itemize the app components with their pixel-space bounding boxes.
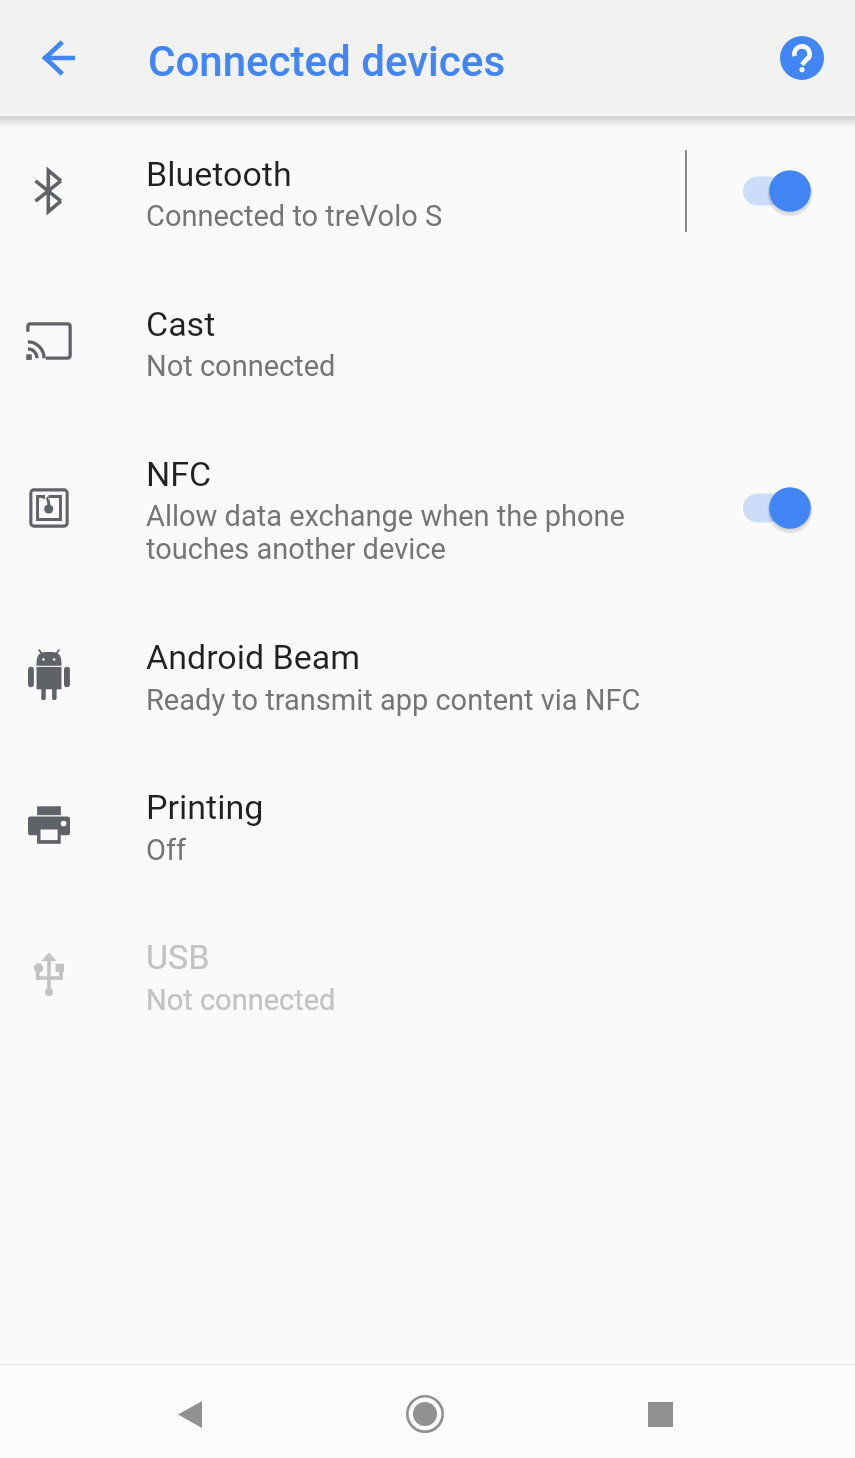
staticText: Connected devices [148, 37, 506, 86]
button[interactable]: Home [390, 1379, 460, 1449]
staticText: Off [146, 833, 187, 867]
staticText: Allow data exchange when the phone [146, 499, 625, 533]
button[interactable]: Toggle NFC [727, 475, 827, 541]
staticText: Printing [146, 787, 264, 827]
button[interactable] [0, 614, 855, 741]
button[interactable] [0, 914, 855, 1041]
staticText: Connected to treVolo S [146, 199, 443, 233]
button[interactable]: Help [767, 23, 837, 93]
button[interactable] [0, 431, 855, 591]
staticText: Ready to transmit app content via NFC [146, 683, 641, 717]
button[interactable] [0, 131, 855, 258]
button[interactable] [0, 281, 855, 408]
staticText: touches another device [146, 532, 446, 566]
staticText: USB [146, 937, 210, 977]
button[interactable]: Back [155, 1379, 225, 1449]
button[interactable]: Recent apps [625, 1379, 695, 1449]
staticText: NFC [146, 454, 212, 494]
button[interactable]: Back [24, 23, 94, 93]
staticText: Not connected [146, 983, 336, 1017]
staticText: Cast [146, 304, 216, 344]
button[interactable]: Toggle Bluetooth [727, 158, 827, 224]
staticText: Not connected [146, 349, 336, 383]
staticText: Bluetooth [146, 154, 292, 194]
staticText: Android Beam [146, 637, 361, 677]
button[interactable] [0, 764, 855, 891]
